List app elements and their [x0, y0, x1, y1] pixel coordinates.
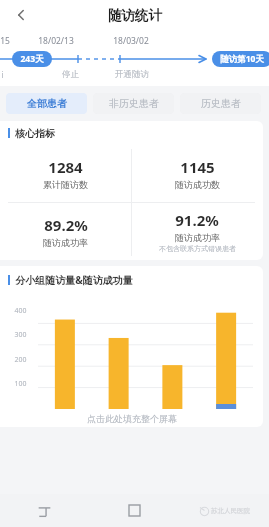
staticText: 15 — [0, 35, 10, 47]
staticText: 历史患者 — [201, 97, 241, 110]
staticText: 100 — [14, 379, 27, 389]
button[interactable]: 非历史患者 — [93, 93, 174, 114]
button[interactable]: 1145 — [131, 145, 263, 202]
button[interactable]: 89.2% — [0, 202, 131, 260]
staticText: 1145 — [180, 157, 215, 177]
button[interactable]: Recents — [0, 494, 89, 527]
staticText: 随访统计 — [108, 7, 162, 24]
staticText: 91.2% — [175, 210, 219, 230]
staticText: 200 — [14, 355, 27, 365]
staticText: 18/02/13 — [38, 35, 74, 47]
staticText: 分小组随访量&随访成功量 — [15, 273, 133, 287]
staticText: 不包含联系方式错误患者 — [159, 244, 236, 253]
staticText: 累计随访数 — [43, 179, 88, 190]
staticText: 核心指标 — [15, 127, 55, 140]
button[interactable]: 243天 — [12, 51, 52, 67]
button[interactable]: 历史患者 — [180, 93, 261, 114]
staticText: 89.2% — [44, 215, 88, 235]
staticText: 1284 — [48, 157, 83, 177]
button[interactable]: 91.2% — [131, 202, 263, 260]
staticText: 点击此处填充整个屏幕 — [87, 413, 177, 424]
staticText: 400 — [14, 306, 27, 316]
staticText: 随访成功率 — [43, 237, 88, 248]
staticText: 随访成功数 — [175, 179, 220, 190]
button[interactable]: 返回 — [8, 2, 34, 28]
button[interactable]: 1284 — [0, 145, 131, 202]
staticText: 非历史患者 — [109, 97, 159, 110]
staticText: 随访成功率 — [175, 232, 220, 243]
staticText: 随访第10天 — [220, 53, 264, 65]
staticText: 300 — [14, 330, 27, 340]
staticText: i — [1, 69, 4, 81]
staticText: 全部患者 — [27, 97, 67, 110]
staticText: 苏北人民医院 — [211, 507, 250, 515]
staticText: 18/03/02 — [113, 35, 149, 47]
button[interactable]: 400 — [0, 300, 263, 423]
staticText: 停止 — [62, 69, 79, 80]
staticText: 开通随访 — [115, 69, 149, 80]
button[interactable]: Home — [89, 494, 179, 527]
staticText: 243天 — [20, 53, 44, 65]
button[interactable]: 全部患者 — [6, 93, 87, 114]
button[interactable]: 随访第10天 — [212, 51, 269, 67]
